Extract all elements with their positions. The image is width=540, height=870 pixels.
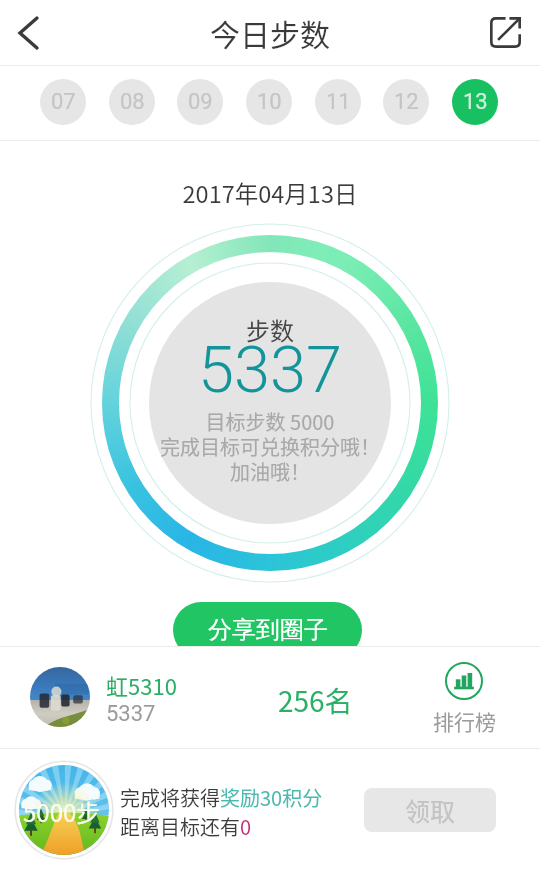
staticText: 2017年04月13日	[0, 176, 540, 210]
staticText: 10	[257, 89, 282, 115]
button[interactable]: 13	[452, 79, 498, 125]
button[interactable]: 排行榜	[417, 662, 511, 736]
staticText: 5337	[0, 332, 540, 408]
staticText: 5337	[106, 701, 156, 727]
staticText: 领取	[405, 792, 456, 828]
staticText: 分享到圈子	[208, 615, 328, 645]
button[interactable]: 11	[315, 79, 361, 125]
staticText: 12	[394, 89, 419, 115]
staticText: 距离目标还有0	[120, 812, 252, 841]
staticText: 11	[326, 89, 351, 115]
button[interactable]: 09	[177, 79, 223, 125]
button[interactable]: 分享到圈子	[173, 602, 362, 658]
button[interactable]: 领取	[364, 788, 496, 832]
button[interactable]: Back	[0, 0, 56, 64]
staticText: 5000步	[23, 794, 101, 829]
staticText: 256名	[278, 680, 353, 721]
staticText: 09	[188, 89, 213, 115]
button[interactable]: Share	[478, 0, 540, 64]
staticText: 08	[120, 89, 145, 115]
button[interactable]: 08	[109, 79, 155, 125]
staticText: 07	[51, 89, 76, 115]
button[interactable]: 07	[40, 79, 86, 125]
staticText: 步数	[0, 312, 540, 347]
staticText: 今日步数	[210, 11, 330, 54]
button[interactable]: 虹5310	[0, 647, 540, 748]
staticText: 13	[463, 89, 488, 115]
button[interactable]: 10	[246, 79, 292, 125]
button[interactable]: 12	[383, 79, 429, 125]
staticText: 排行榜	[433, 706, 496, 736]
staticText: 虹5310	[106, 669, 177, 701]
staticText: 完成将获得奖励30积分	[120, 783, 323, 812]
staticText: 目标步数 5000 完成目标可兑换积分哦！ 加油哦！	[0, 407, 540, 486]
